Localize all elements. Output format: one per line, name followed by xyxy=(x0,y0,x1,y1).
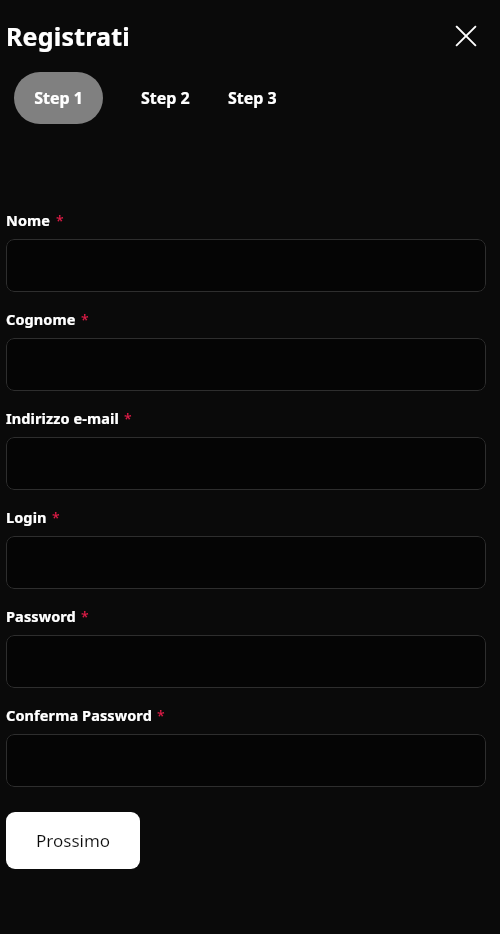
staticText: Password xyxy=(6,606,76,626)
button[interactable]: Prossimo xyxy=(6,812,140,869)
staticText: Indirizzo e-mail xyxy=(6,408,119,428)
staticText: Prossimo xyxy=(36,829,111,852)
button[interactable] xyxy=(6,338,486,391)
staticText: Cognome xyxy=(6,309,76,329)
staticText: Step 2 xyxy=(141,87,190,109)
staticText: Conferma Password xyxy=(6,705,152,725)
staticText: * xyxy=(124,409,132,428)
staticText: Nome xyxy=(6,210,51,230)
staticText: Login xyxy=(6,507,47,527)
staticText: * xyxy=(52,508,60,527)
staticText: Step 1 xyxy=(34,87,83,109)
staticText: * xyxy=(81,310,89,329)
button[interactable]: Step 3 xyxy=(228,72,277,124)
button[interactable]: Step 2 xyxy=(141,72,190,124)
button[interactable]: Step 1 xyxy=(14,72,103,124)
staticText: * xyxy=(157,706,165,725)
staticText: * xyxy=(56,211,64,230)
button[interactable] xyxy=(6,635,486,688)
button[interactable]: Close xyxy=(446,16,486,56)
staticText: * xyxy=(81,607,89,626)
staticText: Step 3 xyxy=(228,87,277,109)
button[interactable] xyxy=(6,239,486,292)
button[interactable] xyxy=(6,437,486,490)
button[interactable] xyxy=(6,734,486,787)
button[interactable] xyxy=(6,536,486,589)
staticText: Registrati xyxy=(6,19,130,53)
